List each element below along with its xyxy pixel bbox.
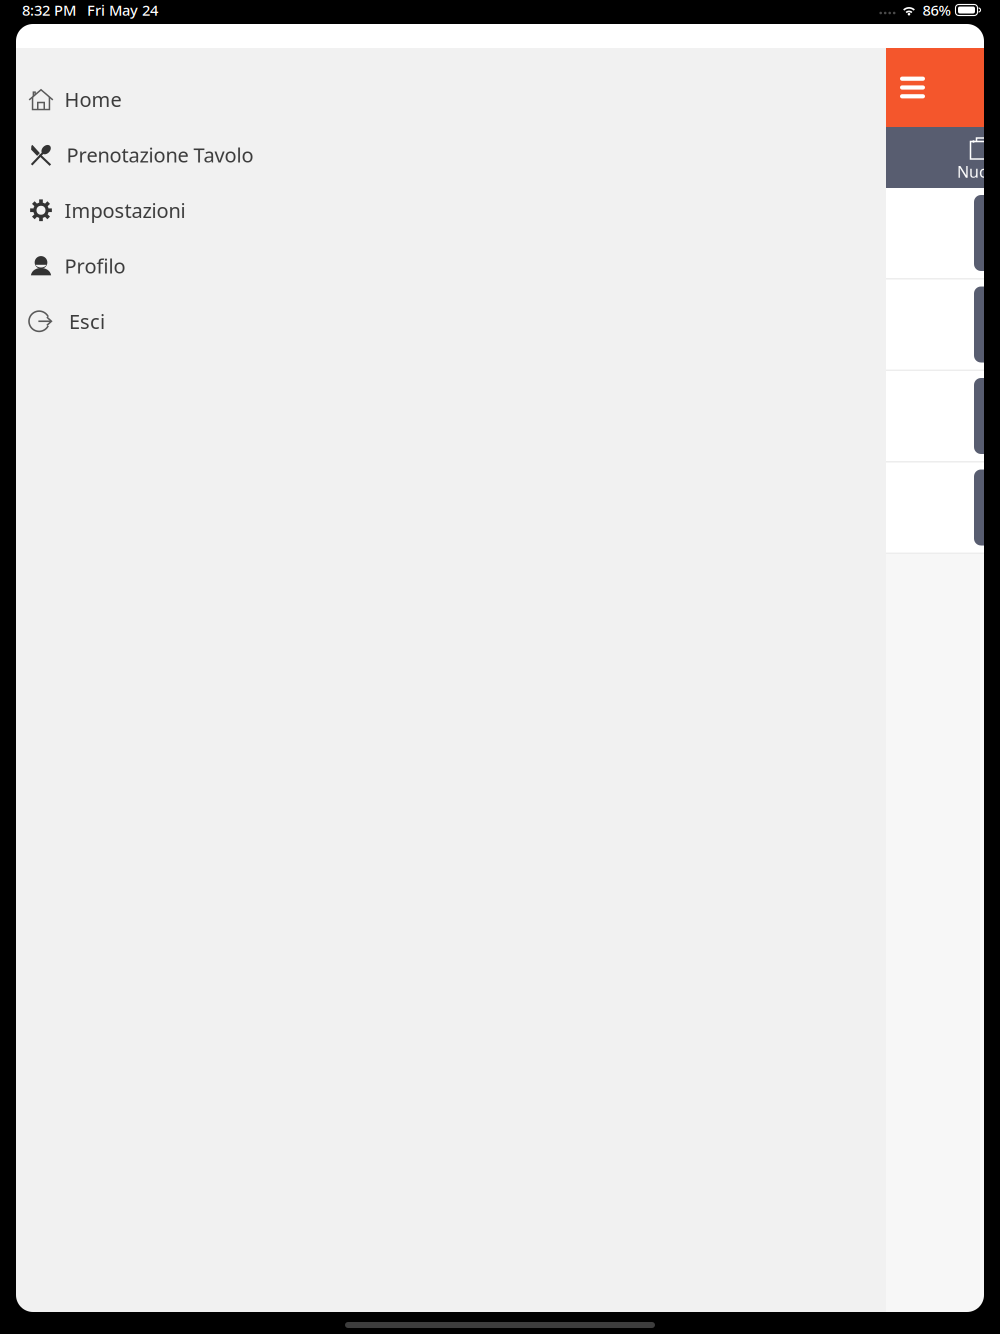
staticText: Profilo <box>64 252 125 279</box>
button[interactable]: Impostazioni <box>16 182 886 238</box>
staticText: Nuova <box>957 161 1000 182</box>
staticText: Home <box>64 86 121 113</box>
button[interactable]: Profilo <box>16 238 886 293</box>
button[interactable]: Home <box>16 71 886 127</box>
button[interactable]: Prenotazione Tavolo <box>16 127 886 182</box>
button[interactable]: Modifica <box>974 286 1000 362</box>
button[interactable]: Esci <box>16 293 886 349</box>
staticText: 86% <box>922 0 950 20</box>
staticText: Prenotazione Tavolo <box>66 141 253 168</box>
button[interactable]: Modifica <box>974 469 1000 545</box>
staticText: Fri May 24 <box>87 0 158 20</box>
button[interactable]: Modifica <box>974 378 1000 454</box>
button[interactable]: Nuova prenotazione <box>951 133 1000 181</box>
staticText: Esci <box>69 308 105 335</box>
button[interactable]: Modifica <box>974 195 1000 271</box>
button[interactable]: Menu <box>886 48 984 127</box>
staticText: 8:32 PM <box>22 0 76 20</box>
staticText: Impostazioni <box>64 197 185 224</box>
